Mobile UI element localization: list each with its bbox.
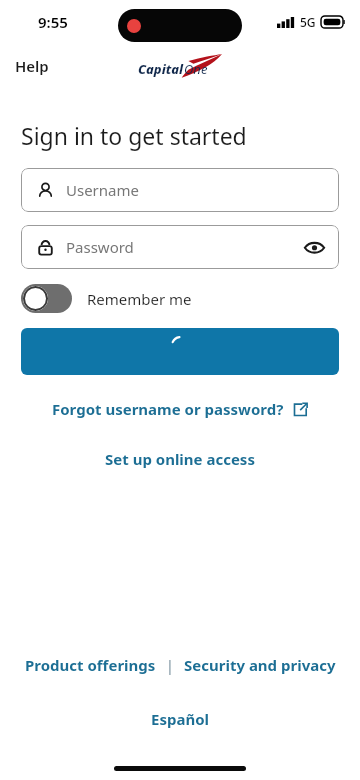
button[interactable]: Username: [21, 168, 339, 212]
staticText: Security and privacy: [184, 655, 336, 675]
staticText: Español: [151, 709, 209, 729]
staticText: |: [158, 655, 182, 675]
staticText: Capital: [138, 60, 184, 78]
button[interactable]: Help: [0, 50, 59, 82]
staticText: Set up online access: [105, 449, 255, 469]
button[interactable]: Security and privacy: [182, 650, 338, 680]
staticText: 5G: [300, 14, 316, 30]
staticText: Help: [15, 56, 49, 76]
button[interactable]: Show password: [290, 229, 339, 266]
staticText: Product offerings: [25, 655, 156, 675]
button[interactable]: Remember me: [21, 284, 192, 313]
staticText: Password: [66, 237, 134, 257]
button[interactable]: Forgot username or password?: [48, 395, 312, 423]
staticText: One: [184, 60, 208, 78]
staticText: Remember me: [87, 289, 192, 309]
staticText: 9:55: [38, 12, 68, 32]
button[interactable]: Signing in: [21, 328, 339, 375]
staticText: Username: [66, 180, 139, 200]
button[interactable]: Español: [139, 704, 221, 734]
button[interactable]: Product offerings: [23, 650, 158, 680]
staticText: Sign in to get started: [21, 120, 247, 151]
button[interactable]: Password: [21, 225, 339, 269]
button[interactable]: Set up online access: [0, 445, 360, 473]
staticText: Forgot username or password?: [52, 399, 284, 419]
